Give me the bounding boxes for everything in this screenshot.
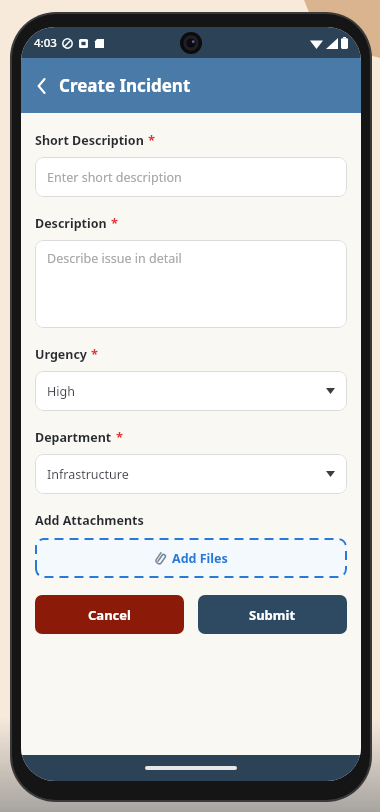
staticText: Add Files (172, 550, 228, 567)
button[interactable]: Back (27, 71, 57, 101)
staticText: Urgency (35, 346, 87, 363)
staticText: * (116, 428, 124, 446)
button[interactable]: Infrastructure (35, 454, 347, 494)
button[interactable]: Enter short description (35, 157, 347, 197)
staticText: Cancel (88, 606, 131, 624)
button[interactable]: Add Files (35, 538, 347, 578)
button[interactable]: Describe issue in detail (35, 240, 347, 328)
staticText: 4:03 (34, 35, 57, 51)
button[interactable]: Cancel (35, 595, 184, 634)
staticText: Short Description (35, 132, 144, 149)
button[interactable]: Submit (198, 595, 347, 634)
staticText: Create Incident (59, 74, 191, 97)
staticText: Infrastructure (47, 466, 129, 483)
staticText: * (148, 131, 156, 149)
staticText: Enter short description (47, 169, 182, 186)
staticText: Department (35, 429, 112, 446)
staticText: High (47, 383, 75, 400)
staticText: Submit (249, 606, 296, 624)
staticText: * (91, 345, 99, 363)
staticText: * (111, 214, 119, 232)
staticText: Describe issue in detail (47, 250, 182, 267)
staticText: Add Attachments (35, 512, 144, 529)
button[interactable]: High (35, 371, 347, 411)
other: Home (145, 766, 237, 770)
staticText: Description (35, 215, 107, 232)
